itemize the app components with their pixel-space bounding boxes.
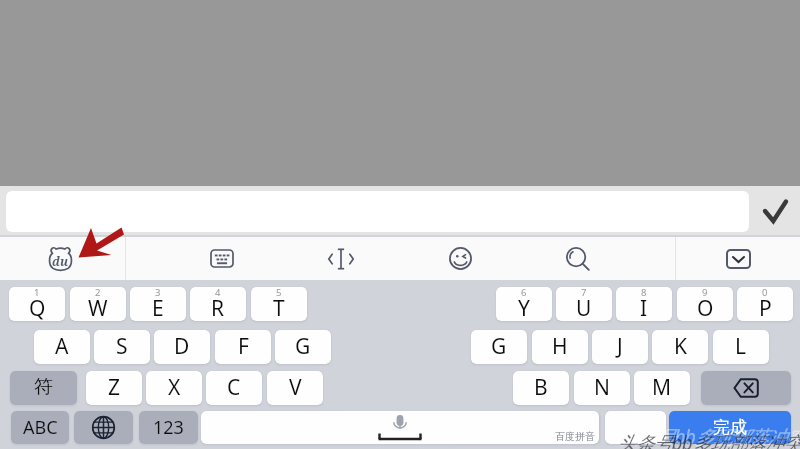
button[interactable]: F [215, 330, 271, 364]
staticText: 完成 [713, 417, 747, 438]
button[interactable]: S [94, 330, 150, 364]
staticText: W [88, 294, 108, 321]
staticText: V [289, 373, 302, 402]
staticText: 头条号bb多玩部落冲突 [617, 430, 800, 449]
button[interactable]: Y [496, 287, 552, 321]
staticText: 3 [155, 287, 161, 299]
staticText: J [617, 332, 623, 361]
button[interactable]: U [556, 287, 612, 321]
button[interactable]: Q [9, 287, 65, 321]
button[interactable]: W [70, 287, 126, 321]
button[interactable]: M [634, 371, 690, 405]
button[interactable]: X [146, 371, 202, 405]
staticText: C [227, 373, 241, 402]
staticText: F [238, 332, 249, 361]
button[interactable]: P [737, 287, 793, 321]
staticText: M [652, 373, 672, 402]
staticText: 头条号bb多玩部落冲突 [620, 424, 800, 449]
staticText: ABC [23, 415, 58, 440]
button[interactable]: G [471, 330, 527, 364]
staticText: 8 [641, 287, 647, 299]
button[interactable]: A [34, 330, 90, 364]
staticText: G [491, 332, 507, 361]
staticText: 4 [215, 287, 221, 299]
button[interactable]: Baidu [0, 237, 120, 280]
staticText: 符 [34, 375, 53, 399]
button[interactable]: I [616, 287, 672, 321]
staticText: L [735, 332, 747, 361]
button[interactable]: Z [86, 371, 142, 405]
button[interactable]: D [154, 330, 210, 364]
staticText: E [152, 294, 164, 321]
staticText: I [640, 294, 648, 321]
button[interactable]: Space [201, 411, 599, 444]
staticText: A [55, 332, 69, 361]
button[interactable]: J [592, 330, 648, 364]
button[interactable]: R [190, 287, 246, 321]
staticText: 5 [276, 287, 282, 299]
button[interactable]: C [206, 371, 262, 405]
button[interactable]: Cursor [281, 237, 401, 280]
button[interactable]: Confirm [752, 186, 800, 235]
staticText: 百度拼音 [555, 430, 595, 443]
staticText: U [576, 294, 592, 321]
staticText: O [697, 294, 714, 321]
staticText: 9 [702, 287, 708, 299]
button[interactable]: G [275, 330, 331, 364]
button[interactable]: ABC [11, 411, 69, 444]
staticText: 123 [153, 415, 184, 440]
staticText: D [174, 332, 190, 361]
button[interactable]: L [713, 330, 769, 364]
staticText: X [168, 373, 181, 402]
staticText: P [759, 294, 772, 321]
button[interactable]: Keyboard [162, 237, 282, 280]
button[interactable]: 123 [139, 411, 198, 444]
staticText: K [674, 332, 687, 361]
button[interactable]: T [251, 287, 307, 321]
button[interactable]: V [267, 371, 323, 405]
button[interactable]: E [130, 287, 186, 321]
staticText: Z [108, 373, 121, 402]
button[interactable]: Language [74, 411, 133, 444]
staticText: 6 [521, 287, 527, 299]
staticText: 0 [762, 287, 768, 299]
button[interactable]: 符 [10, 371, 77, 405]
button[interactable]: 完成 [669, 411, 791, 444]
staticText: G [295, 332, 311, 361]
button[interactable]: Hide keyboard [678, 237, 798, 280]
button[interactable]: Emoji [400, 237, 520, 280]
staticText: 7 [581, 287, 587, 299]
button[interactable]: B [513, 371, 569, 405]
staticText: R [211, 294, 225, 321]
button[interactable]: N [574, 371, 630, 405]
staticText: S [116, 332, 128, 361]
staticText: N [594, 373, 610, 402]
button[interactable] [6, 191, 749, 232]
staticText: T [273, 294, 285, 321]
staticText: H [552, 332, 568, 361]
button[interactable]: H [532, 330, 588, 364]
button[interactable]: K [652, 330, 708, 364]
staticText: 2 [95, 287, 101, 299]
button[interactable]: Backspace [701, 371, 791, 405]
staticText: B [534, 373, 548, 402]
staticText: Q [29, 294, 46, 321]
button[interactable]: Search [518, 237, 638, 280]
button[interactable]: Comma [605, 411, 666, 444]
staticText: Y [518, 294, 530, 321]
button[interactable]: O [677, 287, 733, 321]
staticText: du [52, 253, 69, 269]
staticText: 1 [34, 287, 40, 299]
